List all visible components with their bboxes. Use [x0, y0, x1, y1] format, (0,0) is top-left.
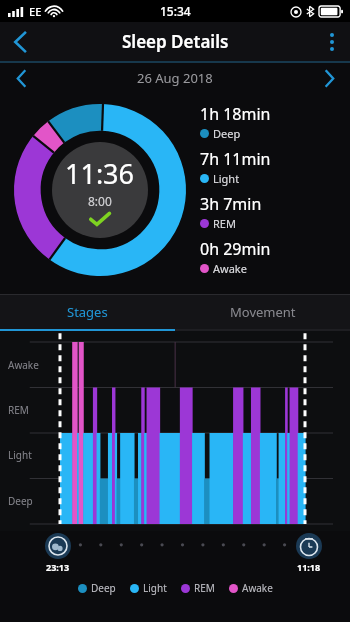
- staticText: 3h 7min: [200, 193, 262, 215]
- staticText: 7h 11min: [200, 148, 271, 170]
- staticText: Deep: [91, 581, 116, 595]
- staticText: Awake: [213, 261, 247, 276]
- staticText: Awake: [8, 358, 39, 372]
- staticText: Light: [8, 448, 32, 462]
- button[interactable]: Back: [0, 22, 40, 61]
- staticText: 1h 18min: [200, 103, 271, 125]
- button[interactable]: Wake time: [296, 533, 322, 559]
- staticText: 8:00: [88, 193, 112, 209]
- button[interactable]: Movement: [175, 295, 350, 329]
- staticText: 11:18: [297, 561, 321, 573]
- staticText: 11:36: [65, 155, 135, 192]
- staticText: 0h 29min: [200, 238, 271, 260]
- staticText: Stages: [67, 303, 108, 321]
- staticText: 23:13: [46, 561, 70, 573]
- staticText: Deep: [8, 494, 33, 508]
- staticText: EE: [29, 4, 42, 19]
- staticText: 15:34: [160, 3, 191, 19]
- staticText: Awake: [242, 581, 273, 595]
- button[interactable]: Next day: [308, 63, 350, 93]
- button[interactable]: Stages: [0, 295, 175, 329]
- staticText: REM: [8, 403, 29, 417]
- button[interactable]: Sleep start: [45, 533, 71, 559]
- button[interactable]: Previous day: [0, 63, 42, 93]
- staticText: Light: [143, 581, 167, 595]
- staticText: Movement: [230, 303, 296, 321]
- staticText: REM: [194, 581, 215, 595]
- staticText: Sleep Details: [122, 30, 229, 53]
- button[interactable]: More options: [314, 22, 350, 61]
- staticText: Deep: [213, 126, 241, 141]
- staticText: REM: [213, 216, 236, 231]
- staticText: 26 Aug 2018: [137, 69, 213, 87]
- staticText: Light: [213, 171, 240, 186]
